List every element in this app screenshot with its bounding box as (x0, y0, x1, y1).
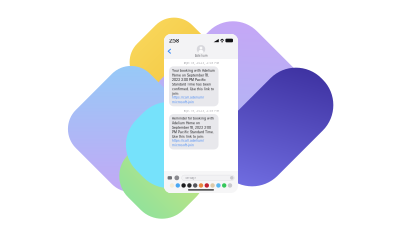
staticText: Your booking with Adelium Home on Septem… (172, 69, 215, 95)
staticText: Adelium (195, 54, 207, 57)
staticText: iMessage (185, 176, 197, 180)
staticText: https://call.adelium/microsoft-join (172, 95, 204, 104)
staticText: Sept 18, 2023, 2:58 PM (183, 109, 218, 112)
staticText: https://call.adelium/microsoft-join (172, 139, 204, 147)
staticText: Reminder for booking with Adelium Home o… (172, 116, 214, 139)
staticText: 2:58 (169, 37, 179, 44)
button[interactable]: Message field (182, 175, 234, 181)
button[interactable]: Apps (174, 175, 179, 180)
staticText: Sept 18, 2023, 2:58 PM (183, 61, 218, 65)
button[interactable]: Back (166, 47, 173, 55)
button[interactable]: Camera (168, 176, 172, 180)
